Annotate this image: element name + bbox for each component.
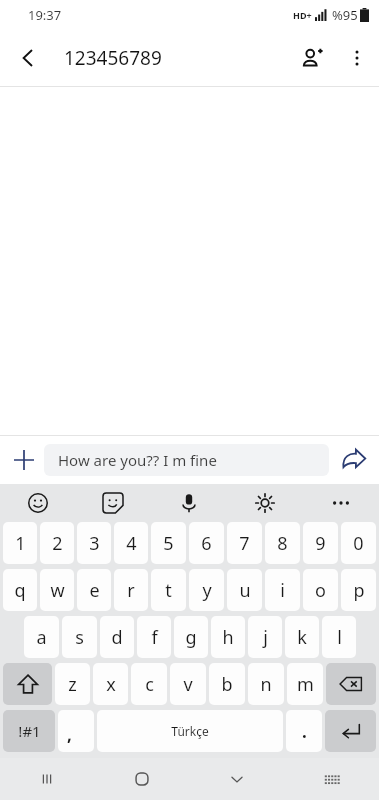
button[interactable]: Backspace: [326, 663, 376, 705]
button[interactable]: Enter: [325, 710, 376, 752]
button[interactable]: a: [24, 616, 59, 658]
button[interactable]: z: [55, 663, 90, 705]
button[interactable]: y: [189, 569, 224, 611]
button[interactable]: Keyboard layout: [284, 758, 379, 800]
staticText: HD+: [293, 9, 312, 21]
staticText: 19:37: [28, 6, 62, 24]
button[interactable]: Hide keyboard: [189, 758, 284, 800]
button[interactable]: g: [174, 616, 208, 658]
button[interactable]: u: [227, 569, 262, 611]
button[interactable]: Add contact: [289, 35, 335, 81]
staticText: 1: [15, 531, 26, 556]
button[interactable]: c: [131, 663, 167, 705]
button[interactable]: More: [303, 484, 379, 522]
staticText: z: [68, 672, 77, 697]
button[interactable]: q: [3, 569, 37, 611]
button[interactable]: Back: [6, 36, 50, 80]
button[interactable]: e: [77, 569, 111, 611]
button[interactable]: k: [285, 616, 319, 658]
button[interactable]: Home: [94, 758, 189, 800]
staticText: q: [14, 578, 26, 603]
staticText: !#1: [18, 721, 41, 741]
staticText: n: [260, 672, 272, 697]
staticText: p: [353, 578, 365, 603]
button[interactable]: j: [248, 616, 282, 658]
staticText: w: [50, 578, 65, 603]
button[interactable]: t: [151, 569, 186, 611]
button[interactable]: 6: [189, 522, 224, 564]
staticText: u: [239, 578, 251, 603]
staticText: 123456789: [64, 45, 162, 71]
button[interactable]: 9: [303, 522, 338, 564]
staticText: a: [36, 625, 47, 650]
staticText: 5: [163, 531, 174, 556]
button[interactable]: x: [93, 663, 128, 705]
staticText: m: [297, 672, 314, 697]
button[interactable]: b: [209, 663, 245, 705]
button[interactable]: 0: [341, 522, 376, 564]
staticText: t: [165, 578, 172, 603]
button[interactable]: Voice input: [151, 484, 227, 522]
button[interactable]: Send: [333, 439, 375, 481]
button[interactable]: 2: [40, 522, 74, 564]
staticText: 4: [126, 531, 137, 556]
staticText: o: [315, 578, 326, 603]
staticText: g: [185, 625, 197, 650]
staticText: d: [111, 625, 123, 650]
staticText: Türkçe: [171, 723, 209, 739]
staticText: .: [302, 720, 307, 743]
staticText: h: [222, 625, 234, 650]
staticText: l: [337, 625, 342, 650]
button[interactable]: Stickers: [75, 484, 151, 522]
button[interactable]: o: [303, 569, 338, 611]
staticText: r: [127, 578, 135, 603]
button[interactable]: i: [265, 569, 300, 611]
staticText: k: [297, 625, 307, 650]
button[interactable]: 4: [114, 522, 148, 564]
button[interactable]: n: [248, 663, 284, 705]
staticText: 6: [201, 531, 212, 556]
staticText: 0: [353, 531, 364, 556]
staticText: e: [89, 578, 100, 603]
staticText: b: [221, 672, 233, 697]
button[interactable]: Emoji: [0, 484, 75, 522]
staticText: f: [151, 625, 158, 650]
staticText: ,: [67, 723, 72, 746]
button[interactable]: More options: [335, 36, 379, 80]
button[interactable]: .: [286, 710, 322, 752]
button[interactable]: Keyboard settings: [227, 484, 303, 522]
button[interactable]: Türkçe: [97, 710, 283, 752]
button[interactable]: w: [40, 569, 74, 611]
button[interactable]: !#1: [3, 710, 55, 752]
button[interactable]: p: [341, 569, 376, 611]
button[interactable]: Add attachment: [4, 440, 44, 480]
staticText: y: [202, 578, 212, 603]
button[interactable]: h: [211, 616, 245, 658]
staticText: 7: [239, 531, 250, 556]
button[interactable]: Shift: [3, 663, 52, 705]
button[interactable]: v: [170, 663, 206, 705]
staticText: 8: [277, 531, 288, 556]
button[interactable]: 8: [265, 522, 300, 564]
button[interactable]: 7: [227, 522, 262, 564]
staticText: %95: [332, 6, 358, 24]
staticText: 3: [89, 531, 100, 556]
staticText: v: [183, 672, 193, 697]
staticText: s: [75, 625, 84, 650]
staticText: How are you?? I m fine: [58, 450, 217, 470]
staticText: 2: [52, 531, 63, 556]
button[interactable]: How are you?? I m fine: [44, 444, 329, 476]
button[interactable]: l: [322, 616, 356, 658]
button[interactable]: Recents: [0, 758, 94, 800]
staticText: j: [263, 625, 268, 650]
button[interactable]: m: [287, 663, 323, 705]
button[interactable]: d: [100, 616, 134, 658]
button[interactable]: 5: [151, 522, 186, 564]
button[interactable]: s: [62, 616, 97, 658]
button[interactable]: ,: [58, 710, 94, 752]
button[interactable]: r: [114, 569, 148, 611]
staticText: c: [145, 672, 154, 697]
button[interactable]: 1: [3, 522, 37, 564]
button[interactable]: 3: [77, 522, 111, 564]
button[interactable]: f: [137, 616, 171, 658]
